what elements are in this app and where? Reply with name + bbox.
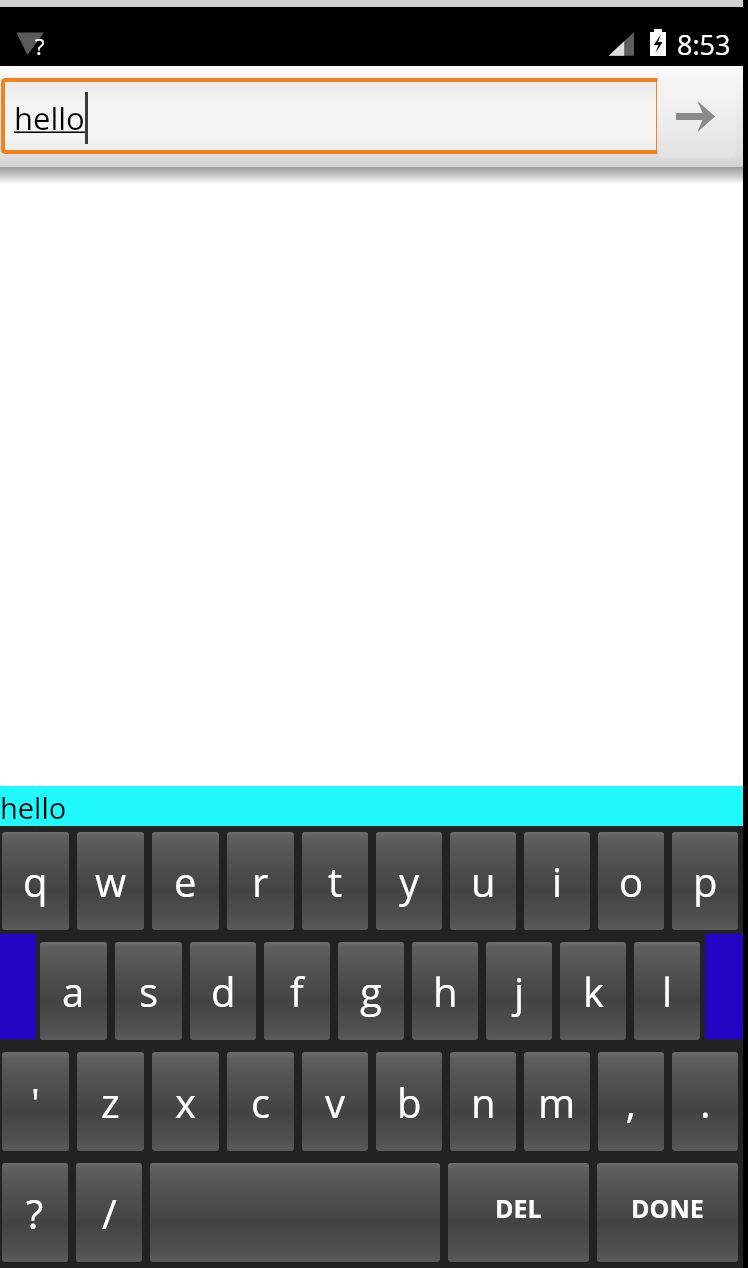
staticText: k <box>583 964 604 1018</box>
button[interactable]: l <box>634 942 700 1040</box>
button[interactable]: t <box>302 832 368 930</box>
button[interactable]: e <box>152 832 219 930</box>
staticText: ? <box>26 1186 44 1240</box>
staticText: 8:53 <box>677 26 731 63</box>
staticText: w <box>95 854 127 908</box>
button[interactable]: o <box>598 832 664 930</box>
staticText: v <box>325 1075 346 1129</box>
staticText: . <box>700 1075 711 1129</box>
button[interactable]: q <box>2 832 69 930</box>
button[interactable]: k <box>560 942 626 1040</box>
staticText: t <box>328 854 343 908</box>
staticText: j <box>514 964 525 1018</box>
staticText: o <box>619 854 644 908</box>
button[interactable]: DEL <box>448 1163 589 1262</box>
button[interactable]: i <box>524 832 590 930</box>
staticText: f <box>290 964 304 1018</box>
staticText: r <box>252 854 269 908</box>
button[interactable] <box>150 1163 440 1262</box>
staticText: z <box>101 1075 120 1129</box>
button[interactable]: z <box>77 1052 144 1151</box>
staticText: n <box>471 1075 496 1129</box>
staticText: / <box>102 1186 117 1240</box>
staticText: q <box>23 854 48 908</box>
staticText: y <box>399 854 420 908</box>
staticText: ? <box>35 31 45 61</box>
button[interactable]: n <box>450 1052 516 1151</box>
button[interactable]: g <box>338 942 404 1040</box>
staticText: m <box>538 1075 576 1129</box>
staticText: s <box>139 964 159 1018</box>
button[interactable]: s <box>115 942 182 1040</box>
staticText: l <box>662 964 673 1018</box>
staticText: i <box>552 854 563 908</box>
staticText: u <box>471 854 496 908</box>
button[interactable]: a <box>40 942 107 1040</box>
staticText: g <box>360 964 382 1018</box>
button[interactable]: DONE <box>597 1163 738 1262</box>
button[interactable]: ? <box>2 1163 68 1262</box>
button[interactable]: / <box>76 1163 142 1262</box>
staticText: c <box>251 1075 271 1129</box>
staticText: hello <box>14 97 85 139</box>
button[interactable]: u <box>450 832 516 930</box>
button[interactable]: r <box>227 832 294 930</box>
staticText: p <box>693 854 718 908</box>
staticText: DONE <box>631 1191 704 1225</box>
button[interactable]: j <box>486 942 552 1040</box>
button[interactable]: d <box>190 942 256 1040</box>
button[interactable]: x <box>152 1052 219 1151</box>
button[interactable]: Go <box>657 75 736 158</box>
staticText: hello <box>0 788 67 827</box>
staticText: d <box>211 964 236 1018</box>
button[interactable]: hello <box>1 78 660 154</box>
button[interactable]: , <box>598 1052 664 1151</box>
button[interactable]: . <box>672 1052 738 1151</box>
button[interactable]: w <box>77 832 144 930</box>
staticText: , <box>626 1075 636 1129</box>
button[interactable]: c <box>227 1052 294 1151</box>
button[interactable]: p <box>672 832 738 930</box>
button[interactable]: m <box>524 1052 590 1151</box>
staticText: e <box>174 854 197 908</box>
staticText: x <box>175 1075 196 1129</box>
button[interactable]: h <box>412 942 478 1040</box>
button[interactable]: ' <box>2 1052 69 1151</box>
button[interactable]: y <box>376 832 442 930</box>
staticText: h <box>433 964 458 1018</box>
staticText: DEL <box>495 1191 542 1225</box>
staticText: b <box>397 1075 422 1129</box>
button[interactable]: f <box>264 942 330 1040</box>
button[interactable]: v <box>302 1052 368 1151</box>
staticText: ' <box>31 1075 40 1129</box>
staticText: a <box>62 964 85 1018</box>
button[interactable]: b <box>376 1052 442 1151</box>
